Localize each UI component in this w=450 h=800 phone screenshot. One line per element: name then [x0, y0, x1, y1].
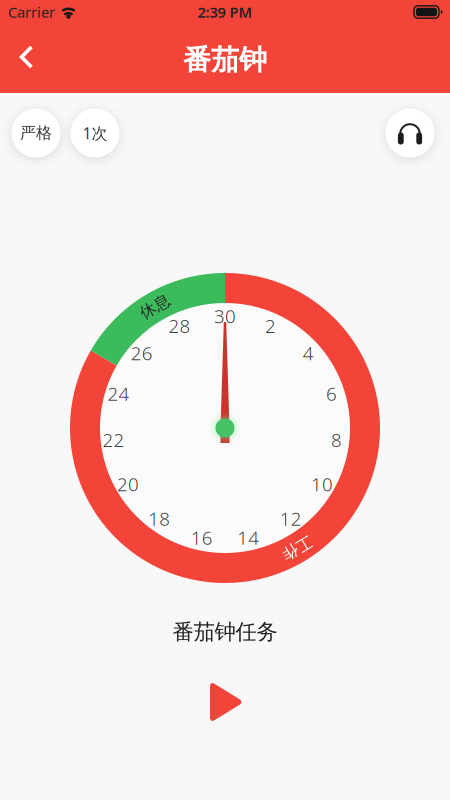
button[interactable]: 严格	[11, 108, 60, 157]
staticText: Carrier	[8, 2, 55, 22]
staticText: 24	[107, 381, 129, 406]
staticText: 26	[131, 341, 153, 365]
staticText: 28	[168, 313, 190, 338]
staticText: 18	[148, 506, 170, 531]
staticText: 14	[237, 525, 259, 550]
staticText: 1次	[82, 122, 107, 144]
button[interactable]: 开始	[200, 671, 254, 733]
staticText: 4	[303, 341, 314, 365]
staticText: 休息	[139, 297, 171, 317]
staticText: 20	[117, 472, 139, 496]
staticText: 2	[265, 313, 276, 338]
staticText: 10	[311, 472, 333, 496]
staticText: 22	[103, 427, 125, 452]
staticText: 工作	[281, 538, 313, 558]
button[interactable]: 白噪音	[385, 108, 434, 157]
staticText: 2:39 PM	[197, 2, 252, 22]
staticText: 6	[326, 381, 337, 406]
staticText: 番茄钟任务	[172, 619, 277, 645]
button[interactable]: Back	[0, 38, 46, 82]
staticText: 30	[214, 304, 236, 328]
staticText: 16	[191, 525, 213, 550]
staticText: 12	[280, 506, 302, 531]
staticText: 番茄钟	[183, 43, 267, 77]
staticText: 8	[331, 427, 342, 452]
staticText: 严格	[20, 123, 52, 143]
button[interactable]: 1次	[70, 108, 119, 157]
